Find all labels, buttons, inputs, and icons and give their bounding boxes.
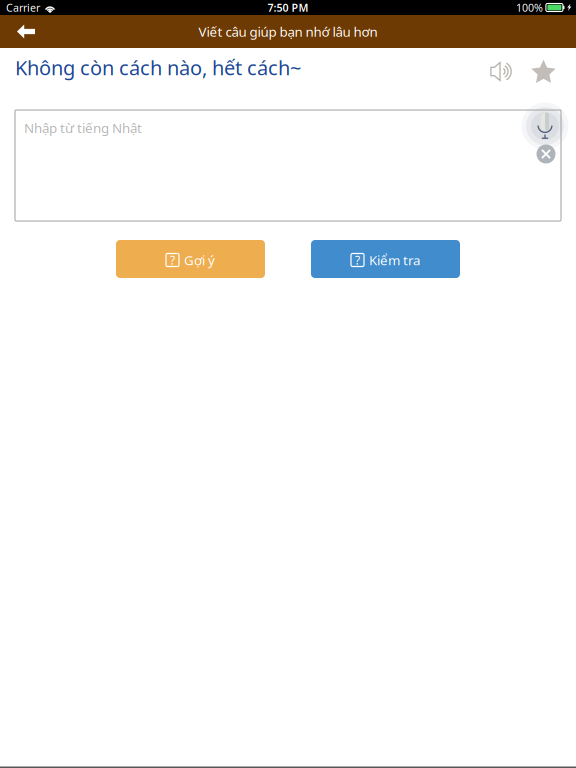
staticText: Không còn cách nào, hết cách~ bbox=[15, 54, 301, 81]
staticText: ? bbox=[170, 252, 175, 268]
button[interactable]: ? bbox=[116, 240, 265, 278]
button[interactable]: Clear text bbox=[536, 144, 555, 163]
staticText: Kiểm tra bbox=[369, 251, 420, 269]
button[interactable]: Back bbox=[0, 15, 52, 48]
button[interactable]: Voice input bbox=[521, 102, 568, 149]
staticText: 7:50 PM bbox=[267, 0, 308, 15]
button[interactable]: Favorite bbox=[531, 59, 556, 84]
staticText: 100% bbox=[516, 0, 543, 15]
staticText: Nhập từ tiếng Nhật bbox=[24, 119, 142, 137]
staticText: Gợi ý bbox=[184, 251, 215, 269]
staticText: Viết câu giúp bạn nhớ lâu hơn bbox=[198, 23, 377, 40]
button[interactable]: ? bbox=[311, 240, 460, 278]
button[interactable]: Play audio bbox=[490, 61, 512, 81]
staticText: ? bbox=[355, 252, 360, 268]
staticText: Carrier bbox=[6, 0, 40, 15]
